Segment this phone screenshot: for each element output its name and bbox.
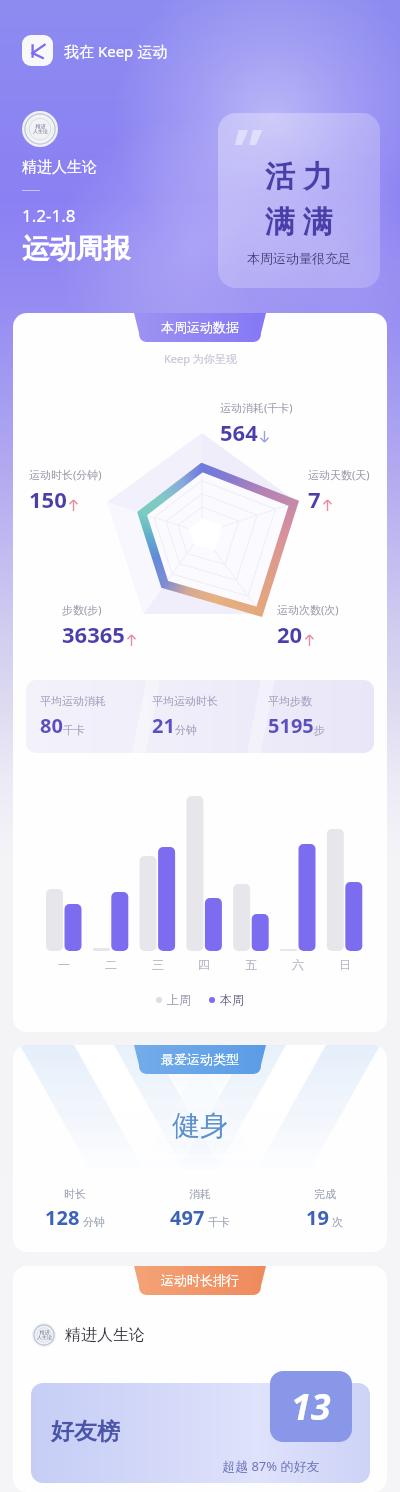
button[interactable]: 好友榜	[31, 1383, 370, 1483]
staticText: 精进人生论	[65, 1325, 145, 1345]
staticText: 活 力	[265, 155, 333, 196]
staticText: 步数(步)	[62, 602, 102, 617]
staticText: 精进人生论	[22, 158, 97, 177]
staticText: 128	[45, 1204, 80, 1231]
button[interactable]: 运动时长排行	[134, 1266, 266, 1295]
staticText: 1.2-1.8	[22, 204, 76, 227]
staticText: 二	[105, 957, 117, 972]
staticText: 7	[308, 484, 321, 514]
staticText: 本周运动量很充足	[247, 250, 351, 266]
staticText: Keep 为你呈现	[164, 351, 237, 366]
staticText: 一	[58, 957, 70, 972]
staticText: 564	[220, 417, 258, 447]
staticText: 精进 人生论	[37, 1329, 52, 1341]
staticText: 13	[291, 1382, 331, 1431]
staticText: 150	[29, 484, 67, 514]
staticText: 千卡	[208, 1215, 230, 1229]
staticText: 运动时长(分钟)	[29, 467, 102, 482]
staticText: 消耗	[189, 1187, 211, 1201]
staticText: 5195	[268, 712, 314, 739]
button[interactable]: 活 力	[218, 113, 380, 288]
staticText: 平均运动消耗	[40, 694, 106, 708]
staticText: 分钟	[175, 723, 197, 737]
staticText: 上周	[167, 992, 191, 1007]
staticText: 平均步数	[268, 694, 312, 708]
staticText: 本周	[220, 992, 244, 1007]
staticText: 日	[339, 957, 351, 972]
staticText: 六	[292, 957, 304, 972]
staticText: 最爱运动类型	[161, 1051, 239, 1067]
button[interactable]: 本周运动数据	[134, 313, 266, 342]
button[interactable]: 最爱运动类型	[134, 1045, 266, 1074]
staticText: 运动次数(次)	[277, 602, 339, 617]
staticText: 三	[152, 957, 164, 972]
staticText: 20	[277, 619, 303, 649]
staticText: 21	[152, 712, 175, 739]
staticText: 超越 87% 的好友	[222, 1457, 320, 1475]
staticText: 运动周报	[22, 232, 130, 266]
staticText: 36365	[62, 619, 125, 649]
staticText: 时长	[64, 1187, 86, 1201]
button[interactable]: 13	[270, 1371, 352, 1442]
staticText: 分钟	[83, 1215, 105, 1229]
staticText: 精进 人生论	[33, 123, 48, 135]
button[interactable]: 我在 Keep 运动	[22, 35, 168, 66]
button[interactable]: 精进 人生论	[32, 1323, 145, 1347]
staticText: 满 满	[265, 200, 333, 241]
staticText: 本周运动数据	[161, 319, 239, 335]
staticText: 19	[306, 1204, 329, 1231]
staticText: 运动时长排行	[161, 1272, 239, 1288]
staticText: 五	[245, 957, 257, 972]
staticText: 运动天数(天)	[308, 467, 370, 482]
staticText: 我在 Keep 运动	[64, 41, 168, 61]
staticText: 完成	[314, 1187, 336, 1201]
staticText: 80	[40, 712, 63, 739]
staticText: 平均运动时长	[152, 694, 218, 708]
staticText: 次	[332, 1215, 343, 1229]
staticText: 497	[170, 1204, 205, 1231]
staticText: 好友榜	[51, 1417, 120, 1446]
staticText: 步	[314, 723, 325, 737]
staticText: 健身	[172, 1108, 228, 1143]
staticText: 运动消耗(千卡)	[220, 400, 293, 415]
staticText: 四	[198, 957, 210, 972]
staticText: 千卡	[63, 723, 85, 737]
